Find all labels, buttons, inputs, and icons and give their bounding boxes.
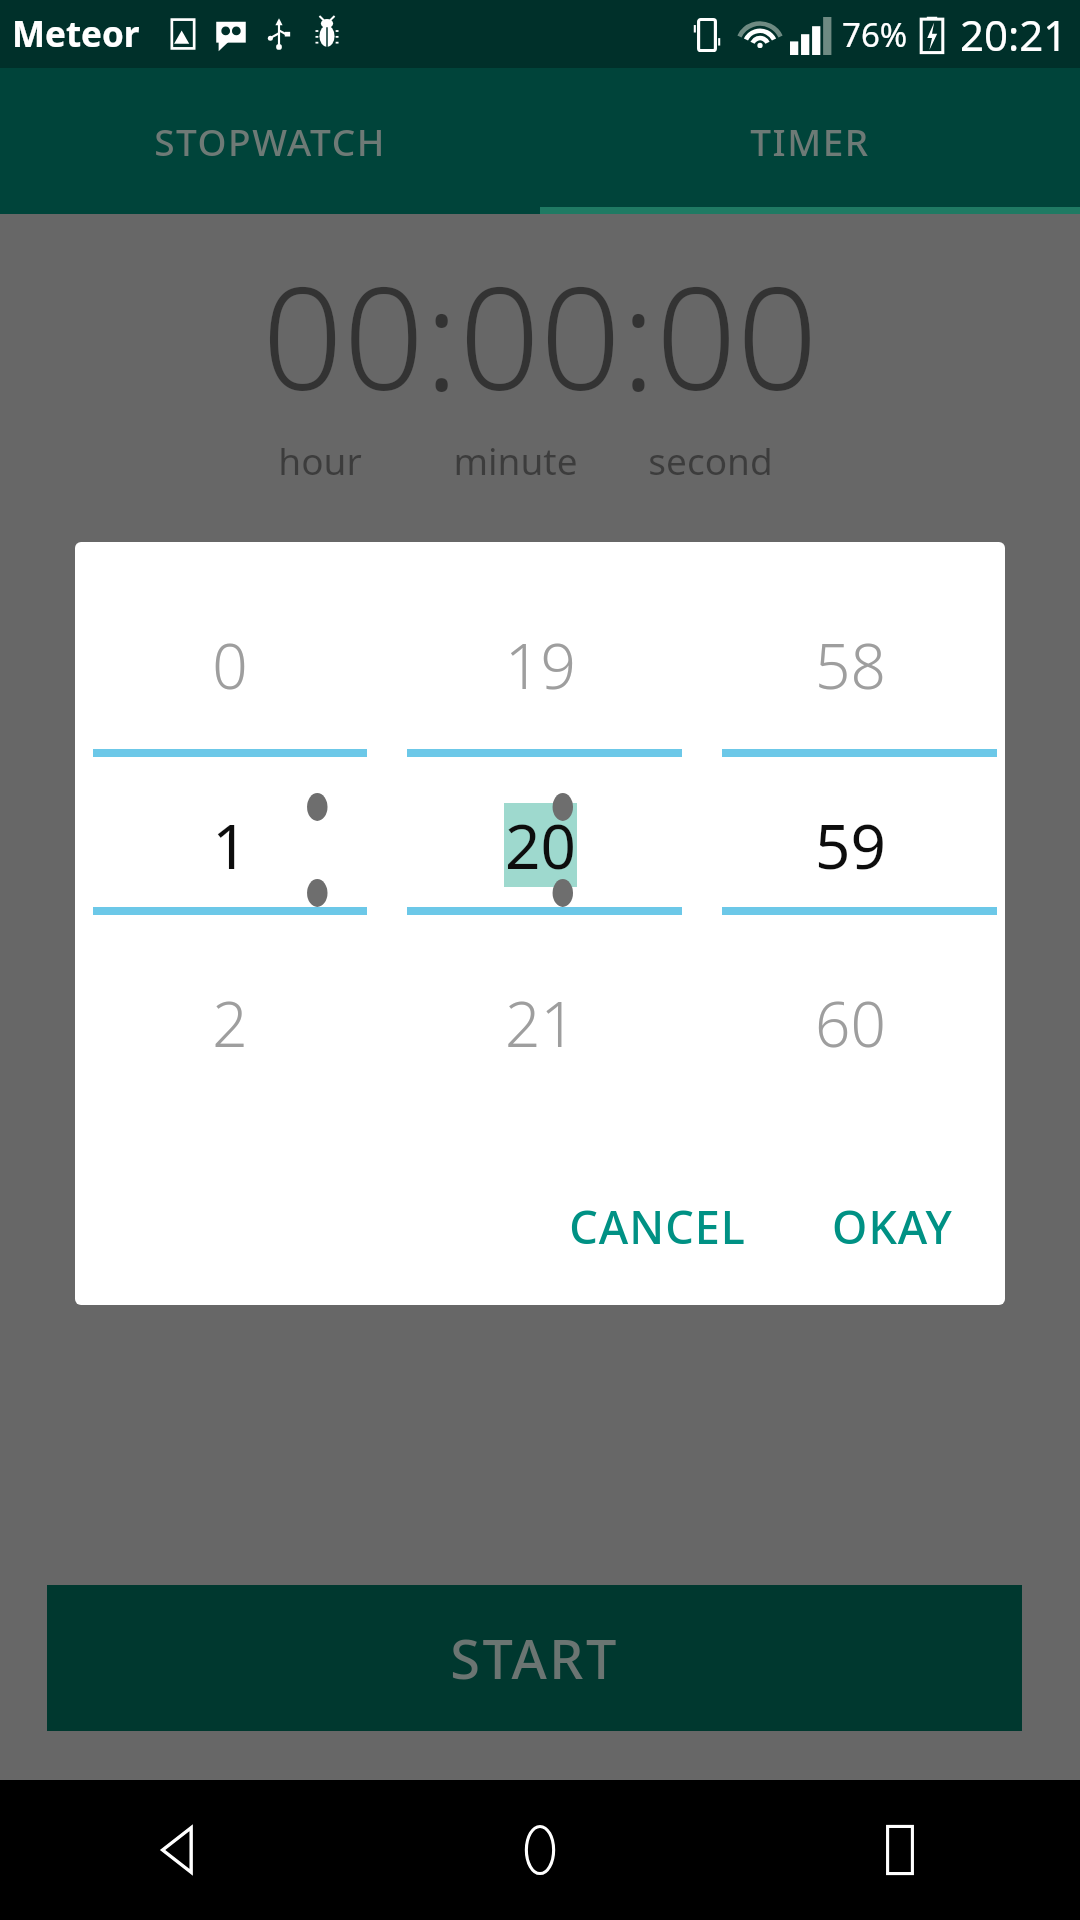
staticText: TIMER — [750, 116, 870, 166]
staticText: 1 — [212, 803, 248, 887]
button[interactable]: START — [47, 1585, 1022, 1731]
button[interactable]: 59 — [695, 800, 1005, 890]
button[interactable]: Home — [360, 1780, 720, 1920]
staticText: START — [450, 1621, 619, 1695]
staticText: OKAY — [832, 1196, 953, 1257]
staticText: 20 — [505, 803, 576, 887]
staticText: 0 — [212, 623, 248, 707]
staticText: Meteor — [12, 10, 140, 58]
button[interactable]: Recent apps — [720, 1780, 1080, 1920]
button[interactable]: 58 — [695, 620, 1005, 710]
button[interactable]: 60 — [695, 978, 1005, 1068]
button[interactable]: 19 — [385, 620, 695, 710]
staticText: 19 — [505, 623, 576, 707]
staticText: hour — [222, 435, 418, 485]
button[interactable]: STOPWATCH — [0, 68, 540, 214]
button[interactable]: 21 — [385, 978, 695, 1068]
staticText: 59 — [815, 803, 886, 887]
staticText: 58 — [815, 623, 886, 707]
staticText: minute — [418, 435, 613, 485]
staticText: 20:21 — [960, 6, 1068, 63]
staticText: 00:00:00 — [0, 238, 1080, 431]
staticText: 2 — [212, 981, 248, 1065]
button[interactable]: 2 — [75, 978, 385, 1068]
button[interactable]: 1 — [75, 800, 385, 890]
staticText: second — [613, 435, 808, 485]
staticText: STOPWATCH — [154, 116, 386, 166]
staticText: CANCEL — [569, 1196, 746, 1257]
button[interactable]: Back — [0, 1780, 360, 1920]
button[interactable]: 20 — [385, 800, 695, 890]
button[interactable]: CANCEL — [547, 1178, 768, 1275]
button[interactable]: TIMER — [540, 68, 1080, 214]
staticText: 60 — [815, 981, 886, 1065]
staticText: 76% — [842, 12, 908, 57]
staticText: 21 — [505, 981, 576, 1065]
button[interactable]: OKAY — [810, 1178, 975, 1275]
button[interactable]: 0 — [75, 620, 385, 710]
